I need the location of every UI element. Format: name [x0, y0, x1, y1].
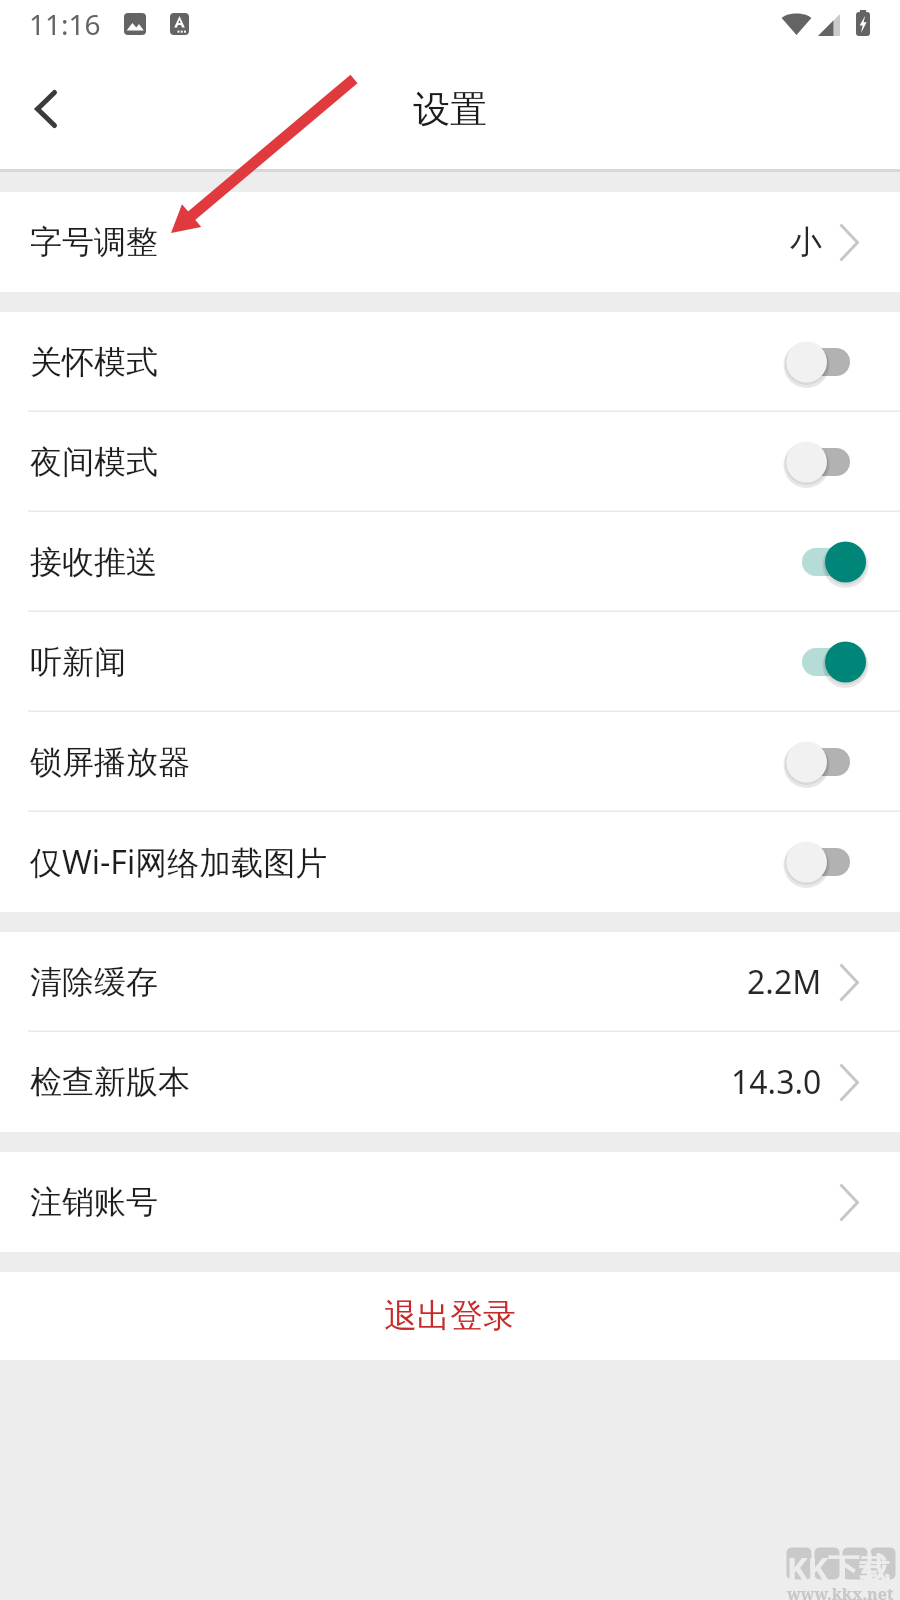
button[interactable]: 仅Wi-Fi网络加载图片 off — [786, 839, 866, 885]
button[interactable]: 清除缓存 — [0, 932, 900, 1032]
button[interactable]: 注销账号 — [0, 1152, 900, 1252]
button[interactable]: 夜间模式 off — [786, 439, 866, 485]
staticText: 注销账号 — [30, 1182, 158, 1222]
button[interactable]: 锁屏播放器 off — [786, 739, 866, 785]
staticText: 字号调整 — [30, 222, 158, 262]
button[interactable]: 字号调整 — [0, 192, 900, 292]
staticText: 接收推送 — [30, 542, 158, 582]
staticText: 检查新版本 — [30, 1062, 190, 1102]
staticText: 仅Wi-Fi网络加载图片 — [30, 840, 328, 884]
staticText: 设置 — [413, 86, 487, 133]
button[interactable]: 听新闻 — [0, 612, 900, 712]
button[interactable]: 听新闻 on — [786, 639, 866, 685]
staticText: 11:16 — [29, 5, 101, 43]
staticText: 14.3.0 — [731, 1060, 822, 1104]
button[interactable]: 关怀模式 off — [786, 339, 866, 385]
staticText: KK下载 — [787, 1547, 891, 1589]
button[interactable]: 夜间模式 — [0, 412, 900, 512]
button[interactable]: Back — [0, 58, 92, 160]
staticText: 退出登录 — [384, 1295, 516, 1337]
staticText: 2.2M — [747, 960, 822, 1004]
staticText: 关怀模式 — [30, 342, 158, 382]
staticText: 清除缓存 — [30, 962, 158, 1002]
button[interactable]: 接收推送 — [0, 512, 900, 612]
button[interactable]: 仅Wi-Fi网络加载图片 — [0, 812, 900, 912]
staticText: 锁屏播放器 — [30, 742, 190, 782]
staticText: www.kkx.net — [787, 1583, 894, 1600]
button[interactable]: 接收推送 on — [786, 539, 866, 585]
staticText: 夜间模式 — [30, 442, 158, 482]
staticText: 小 — [790, 222, 822, 262]
button[interactable]: 检查新版本 — [0, 1032, 900, 1132]
button[interactable]: 关怀模式 — [0, 312, 900, 412]
button[interactable]: 退出登录 — [0, 1272, 900, 1360]
staticText: 听新闻 — [30, 642, 126, 682]
button[interactable]: 锁屏播放器 — [0, 712, 900, 812]
